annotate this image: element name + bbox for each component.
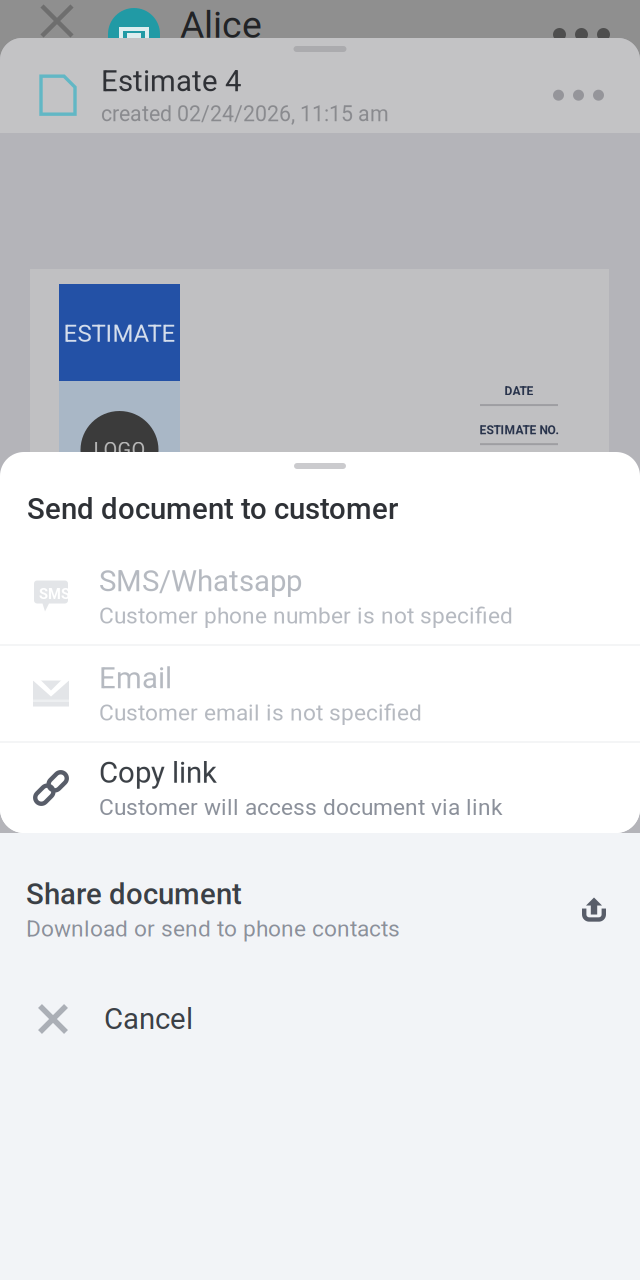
staticText: Customer will access document via link bbox=[99, 794, 502, 820]
staticText: Cancel bbox=[104, 1002, 193, 1036]
button[interactable]: Email bbox=[0, 646, 640, 741]
staticText: Share document bbox=[26, 877, 242, 911]
button[interactable]: Copy link bbox=[0, 743, 640, 833]
staticText: DATE bbox=[504, 384, 533, 398]
staticText: SMS/Whatsapp bbox=[99, 564, 302, 598]
button[interactable]: SMS bbox=[0, 549, 640, 644]
staticText: Copy link bbox=[99, 755, 217, 790]
staticText: Customer email is not specified bbox=[99, 699, 422, 726]
staticText: SMS bbox=[39, 585, 70, 603]
staticText: Estimate 4 bbox=[101, 64, 241, 98]
staticText: created 02/24/2026, 11:15 am bbox=[101, 101, 389, 126]
staticText: Customer phone number is not specified bbox=[99, 602, 513, 629]
staticText: LOGO bbox=[93, 438, 145, 462]
button[interactable]: Cancel bbox=[0, 967, 640, 1071]
staticText: ESTIMATE NO. bbox=[479, 423, 558, 437]
staticText: Download or send to phone contacts bbox=[26, 915, 400, 942]
staticText: Send document to customer bbox=[27, 492, 398, 526]
button[interactable]: Share document bbox=[0, 833, 640, 967]
staticText: Email bbox=[99, 661, 172, 695]
staticText: Alice bbox=[180, 3, 262, 47]
staticText: ESTIMATE bbox=[63, 319, 175, 347]
